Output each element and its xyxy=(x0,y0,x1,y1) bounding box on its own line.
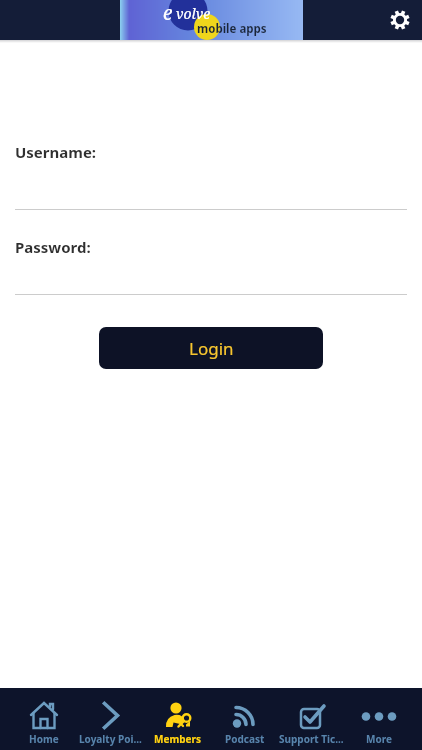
button[interactable]: Login xyxy=(99,327,323,369)
button[interactable] xyxy=(389,9,411,31)
button[interactable]: Home xyxy=(10,688,77,750)
button[interactable]: Podcast xyxy=(211,688,278,750)
button[interactable]: Support Tic... xyxy=(278,688,345,750)
staticText: e xyxy=(163,0,173,26)
staticText: Login xyxy=(189,337,234,360)
staticText: Members xyxy=(154,732,201,746)
button[interactable]: More xyxy=(345,688,412,750)
staticText: mobile apps xyxy=(197,21,267,37)
staticText: Support Tic... xyxy=(279,732,344,746)
button[interactable]: Loyalty Poi... xyxy=(77,688,144,750)
staticText: Username: xyxy=(15,142,97,162)
staticText: volve xyxy=(176,4,211,23)
staticText: More xyxy=(366,732,392,746)
staticText: Home xyxy=(29,732,59,746)
staticText: Password: xyxy=(15,237,91,257)
staticText: Podcast xyxy=(225,732,265,746)
staticText: Loyalty Poi... xyxy=(79,732,142,746)
button[interactable]: Members xyxy=(144,688,211,750)
